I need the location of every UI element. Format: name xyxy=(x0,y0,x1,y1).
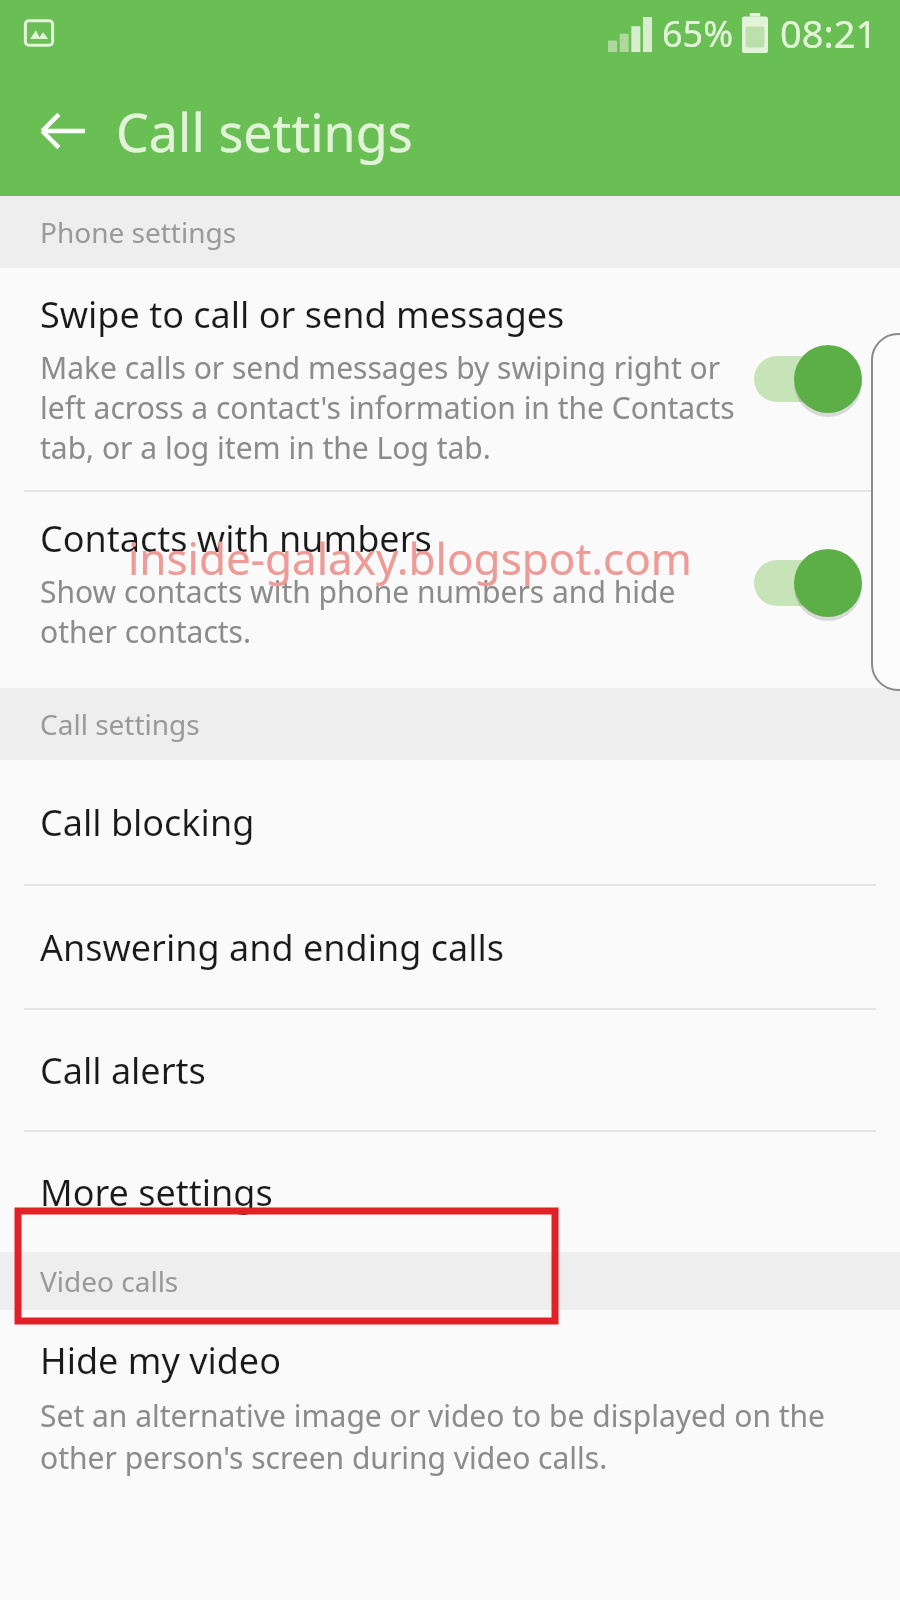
other: Battery xyxy=(742,13,768,53)
other: Signal strength xyxy=(608,14,652,52)
staticText: Hide my video xyxy=(40,1336,281,1385)
staticText: Phone settings xyxy=(40,213,237,251)
staticText: Call alerts xyxy=(40,1046,206,1095)
staticText: More settings xyxy=(40,1168,273,1217)
staticText: Contacts with numbers xyxy=(40,514,432,563)
staticText: 08:21 xyxy=(780,7,878,59)
button[interactable]: Swipe to call or send messages xyxy=(0,268,900,490)
staticText: inside-galaxy.blogspot.com xyxy=(128,528,692,588)
staticText: Call settings xyxy=(40,705,200,743)
button[interactable]: Contacts with numbers xyxy=(0,492,900,674)
staticText: Video calls xyxy=(40,1262,179,1300)
button[interactable]: Call blocking xyxy=(0,760,900,884)
staticText: Show contacts with phone numbers and hid… xyxy=(40,571,738,652)
staticText: Swipe to call or send messages xyxy=(40,290,565,339)
button[interactable]: Back xyxy=(28,96,98,166)
button[interactable]: More settings xyxy=(0,1132,900,1252)
staticText: Make calls or send messages by swiping r… xyxy=(40,347,738,468)
staticText: Call settings xyxy=(116,96,413,167)
button[interactable]: Hide my video xyxy=(0,1310,900,1478)
button[interactable]: Call alerts xyxy=(0,1010,900,1130)
staticText: Answering and ending calls xyxy=(40,923,504,972)
button[interactable]: Answering and ending calls xyxy=(0,886,900,1008)
staticText: Set an alternative image or video to be … xyxy=(40,1395,860,1478)
staticText: 65% xyxy=(662,9,734,58)
other: Toggle xyxy=(750,339,870,419)
staticText: Call blocking xyxy=(40,798,255,847)
other: Toggle xyxy=(750,543,870,623)
